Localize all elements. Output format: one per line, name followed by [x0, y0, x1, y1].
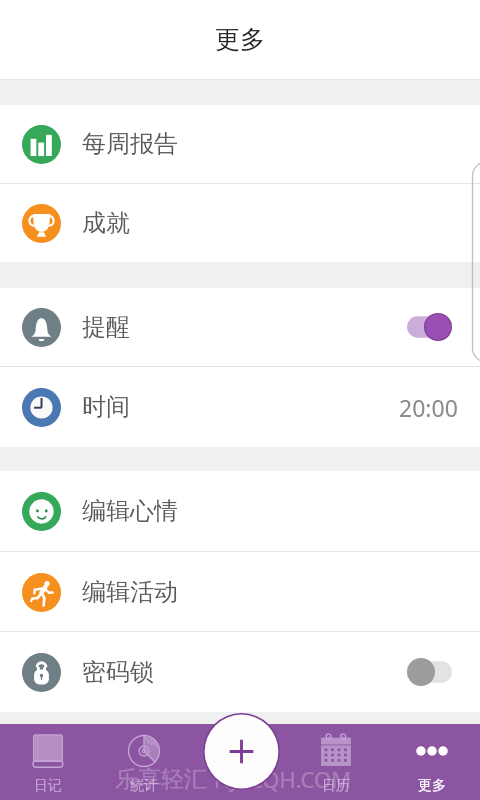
staticText: 统计 — [130, 777, 158, 795]
staticText: 20:00 — [399, 392, 458, 423]
staticText: 更多 — [215, 24, 265, 55]
button[interactable]: 更多 — [384, 724, 480, 800]
button[interactable]: 时间 — [0, 367, 480, 447]
button[interactable]: 成就 — [0, 184, 480, 262]
button[interactable]: 统计 — [96, 724, 192, 800]
staticText: 密码锁 — [82, 657, 154, 687]
staticText: 成就 — [82, 208, 130, 238]
button[interactable]: Add new entry — [203, 713, 280, 790]
button[interactable]: 编辑心情 — [0, 471, 480, 551]
staticText: 更多 — [418, 777, 446, 795]
button[interactable]: Reminder toggle, on — [407, 313, 452, 341]
staticText: 乐享轻汇 — [115, 765, 207, 794]
button[interactable]: 密码锁 — [0, 632, 480, 712]
staticText: 时间 — [82, 392, 130, 422]
staticText: 日历 — [322, 777, 350, 795]
button[interactable]: Password lock toggle, off — [407, 658, 452, 686]
staticText: 编辑活动 — [82, 577, 178, 607]
button[interactable]: 提醒 — [0, 288, 480, 366]
staticText: 每周报告 — [82, 129, 178, 159]
staticText: 编辑心情 — [82, 496, 178, 526]
button[interactable]: 编辑活动 — [0, 552, 480, 631]
button[interactable]: 日历 — [288, 724, 384, 800]
staticText: 日记 — [34, 777, 62, 795]
staticText: 提醒 — [82, 312, 130, 342]
button[interactable]: 日记 — [0, 724, 96, 800]
staticText: NJYCQH.COM — [214, 764, 352, 794]
button[interactable]: 每周报告 — [0, 105, 480, 183]
